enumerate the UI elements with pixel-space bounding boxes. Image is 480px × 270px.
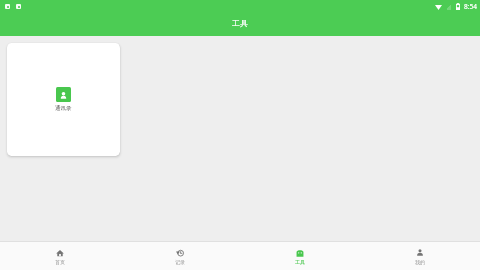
- button[interactable]: 记录: [120, 242, 240, 270]
- staticText: 我的: [415, 259, 425, 265]
- staticText: 通讯录: [55, 105, 72, 112]
- button[interactable]: 工具: [240, 242, 360, 270]
- button[interactable]: 首页: [0, 242, 120, 270]
- staticText: 工具: [295, 259, 305, 265]
- staticText: 8:54: [464, 2, 477, 11]
- button[interactable]: 通讯录: [7, 43, 120, 156]
- staticText: 首页: [55, 259, 65, 265]
- staticText: 工具: [232, 18, 248, 28]
- button[interactable]: 我的: [360, 242, 480, 270]
- staticText: 记录: [175, 259, 185, 265]
